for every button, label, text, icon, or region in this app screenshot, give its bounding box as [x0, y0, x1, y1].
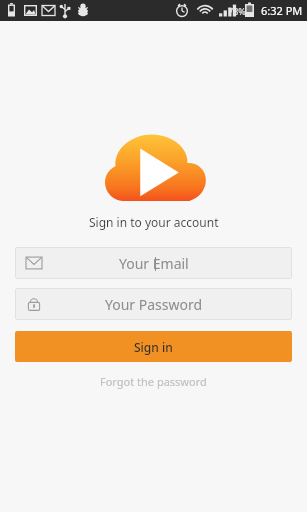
staticText: Sign in to your account — [89, 214, 219, 230]
staticText: 73% — [228, 5, 246, 17]
other: App logo — [102, 128, 206, 204]
staticText: Sign in — [134, 339, 173, 355]
staticText: Forgot the password — [100, 374, 207, 389]
button[interactable]: Your Email — [15, 247, 292, 279]
staticText: Your Email — [119, 254, 189, 273]
button[interactable]: Forgot the password — [86, 369, 221, 394]
staticText: Your Password — [105, 295, 203, 314]
staticText: 6:32 PM — [261, 3, 303, 18]
button[interactable]: Your Password — [15, 288, 292, 320]
button[interactable]: Sign in — [15, 331, 292, 362]
